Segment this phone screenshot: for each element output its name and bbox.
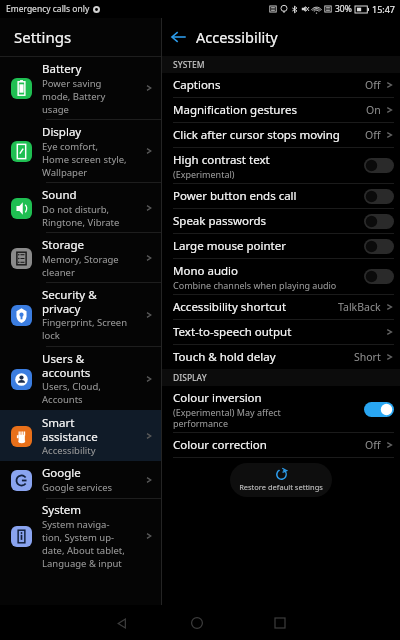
button[interactable]: Colour inversion (162, 386, 400, 432)
staticText: Security & privacy (42, 287, 97, 316)
staticText: System (42, 502, 82, 518)
staticText: Restore default settings (239, 482, 323, 492)
button[interactable]: Battery (0, 57, 161, 119)
staticText: Text-to-speech output (173, 324, 292, 340)
button[interactable]: Captions (162, 73, 400, 97)
staticText: 15:47 (372, 3, 396, 15)
staticText: Users, Cloud, Accounts (42, 380, 101, 406)
staticText: SYSTEM (173, 59, 205, 71)
staticText: High contrast text (173, 152, 270, 168)
staticText: System naviga- tion, System up- date, Ab… (42, 518, 125, 570)
button[interactable]: Off (364, 158, 394, 173)
staticText: Mono audio (173, 263, 238, 279)
staticText: Users & accounts (42, 351, 91, 380)
staticText: Emergency calls only (6, 3, 90, 15)
staticText: (Experimental) (173, 168, 235, 180)
staticText: Power button ends call (173, 188, 297, 204)
button[interactable]: Magnification gestures (162, 98, 400, 122)
button[interactable]: Smart assistance (0, 410, 161, 461)
staticText: Off (365, 78, 381, 92)
staticText: DISPLAY (173, 372, 207, 384)
button[interactable]: Text-to-speech output (162, 320, 400, 344)
button[interactable]: Storage (0, 233, 161, 282)
staticText: Short (354, 350, 381, 364)
button[interactable]: Off (364, 214, 394, 229)
button[interactable]: Accessibility shortcut (162, 295, 400, 319)
staticText: Settings (14, 27, 72, 47)
staticText: Smart assistance (42, 415, 98, 444)
staticText: Memory, Storage cleaner (42, 253, 119, 279)
staticText: Off (365, 438, 381, 452)
staticText: Captions (173, 77, 221, 93)
button[interactable]: Home (184, 610, 210, 636)
button[interactable]: Restore default settings (230, 463, 332, 497)
staticText: Power saving mode, Battery usage (42, 77, 106, 116)
button[interactable]: Recents (267, 610, 293, 636)
button[interactable]: Back (162, 20, 196, 54)
button[interactable]: System (0, 499, 161, 573)
staticText: Google (42, 465, 81, 481)
button[interactable]: On (364, 402, 394, 417)
staticText: Speak passwords (173, 213, 267, 229)
staticText: Accessibility (42, 444, 96, 457)
button[interactable]: Users & accounts (0, 347, 161, 410)
staticText: Battery (42, 61, 82, 77)
button[interactable]: Large mouse pointer (162, 234, 400, 258)
staticText: Display (42, 124, 82, 140)
staticText: Do not disturb, Ringtone, Vibrate (42, 203, 120, 229)
button[interactable]: Off (364, 239, 394, 254)
button[interactable]: Speak passwords (162, 209, 400, 233)
button[interactable]: Google (0, 461, 161, 498)
button[interactable]: Back (108, 610, 134, 636)
staticText: 30% (335, 3, 352, 15)
staticText: Accessibility (196, 27, 278, 47)
staticText: Google services (42, 481, 113, 494)
button[interactable]: Colour correction (162, 433, 400, 457)
staticText: Off (365, 128, 381, 142)
staticText: Colour correction (173, 437, 267, 453)
button[interactable]: Sound (0, 183, 161, 232)
button[interactable]: Mono audio (162, 259, 400, 294)
staticText: Large mouse pointer (173, 238, 286, 254)
staticText: TalkBack (338, 300, 381, 314)
button[interactable]: High contrast text (162, 148, 400, 183)
staticText: Eye comfort, Home screen style, Wallpape… (42, 140, 127, 179)
staticText: Click after cursor stops moving (173, 127, 340, 143)
button[interactable]: Security & privacy (0, 283, 161, 346)
button[interactable]: Touch & hold delay (162, 345, 400, 369)
staticText: Magnification gestures (173, 102, 297, 118)
staticText: On (366, 103, 381, 117)
staticText: Combine channels when playing audio (173, 279, 337, 291)
staticText: (Experimental) May affect performance (173, 406, 281, 429)
staticText: Sound (42, 187, 77, 203)
staticText: Colour inversion (173, 390, 262, 406)
staticText: Fingerprint, Screen lock (42, 316, 128, 342)
staticText: Storage (42, 237, 84, 253)
button[interactable]: Power button ends call (162, 184, 400, 208)
button[interactable]: Display (0, 120, 161, 182)
button[interactable]: Off (364, 189, 394, 204)
button[interactable]: Off (364, 269, 394, 284)
staticText: Accessibility shortcut (173, 299, 287, 315)
button[interactable]: Click after cursor stops moving (162, 123, 400, 147)
staticText: Touch & hold delay (173, 349, 276, 365)
